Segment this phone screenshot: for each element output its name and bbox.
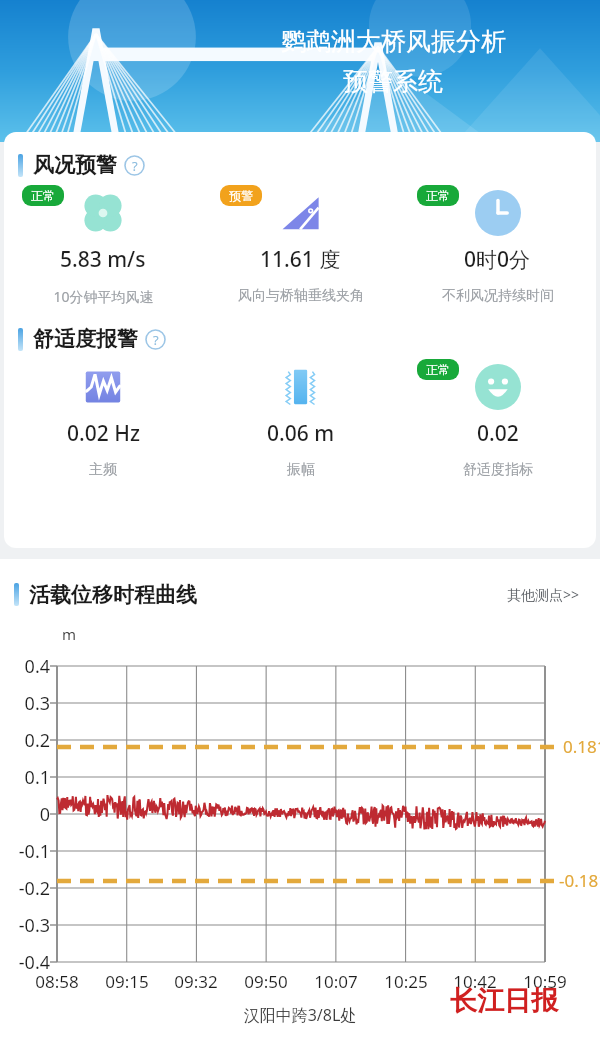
staticText: 0.02 Hz: [67, 419, 140, 448]
button[interactable]: 帮助说明: [124, 155, 145, 176]
staticText: 鹦鹉洲大桥风振分析: [281, 26, 506, 57]
staticText: 汉阳中跨3/8L处: [0, 1004, 600, 1026]
staticText: -0.181: [559, 869, 600, 892]
staticText: 5.83 m/s: [60, 245, 146, 274]
staticText: 10:25: [375, 970, 437, 993]
staticText: 其他测点>>: [507, 585, 580, 604]
staticText: 舒适度报警: [33, 326, 138, 352]
button[interactable]: 正常: [399, 184, 596, 305]
staticText: 风向与桥轴垂线夹角: [238, 287, 364, 305]
staticText: 风况预警: [33, 152, 117, 178]
staticText: 预警系统: [343, 66, 443, 97]
staticText: 活载位移时程曲线: [29, 582, 197, 608]
staticText: m: [62, 624, 77, 644]
staticText: 正常: [31, 188, 55, 203]
staticText: 09:15: [96, 970, 158, 993]
staticText: 0.06 m: [267, 419, 335, 448]
staticText: 0.4: [4, 654, 50, 679]
staticText: 0.1: [4, 765, 50, 790]
staticText: ?: [132, 157, 138, 175]
staticText: -0.4: [4, 950, 50, 975]
staticText: 预警: [229, 188, 253, 203]
staticText: 0.02: [477, 419, 519, 448]
staticText: 不利风况持续时间: [442, 287, 554, 305]
button[interactable]: 0.06 m: [202, 358, 399, 479]
staticText: 11.61 度: [260, 245, 341, 274]
staticText: 正常: [426, 188, 450, 203]
staticText: 09:32: [165, 970, 227, 993]
staticText: -0.2: [4, 876, 50, 901]
button[interactable]: 其他测点>>: [503, 581, 584, 608]
staticText: ?: [153, 331, 159, 349]
staticText: 正常: [426, 362, 450, 377]
staticText: 0时0分: [464, 245, 531, 274]
staticText: 0.181: [563, 735, 600, 758]
staticText: -0.3: [4, 913, 50, 938]
staticText: 0.2: [4, 728, 50, 753]
button[interactable]: 正常: [4, 184, 202, 306]
staticText: 振幅: [287, 461, 315, 479]
button[interactable]: 0.02 Hz: [4, 358, 202, 479]
staticText: -0.1: [4, 839, 50, 864]
button[interactable]: 帮助说明: [145, 329, 166, 350]
staticText: 10:59: [514, 970, 576, 993]
staticText: 0: [4, 802, 50, 827]
staticText: 08:58: [26, 970, 88, 993]
button[interactable]: 正常: [399, 358, 596, 479]
staticText: 10:42: [444, 970, 506, 993]
staticText: 舒适度指标: [463, 461, 533, 479]
staticText: 09:50: [235, 970, 297, 993]
staticText: 10:07: [305, 970, 367, 993]
button[interactable]: 预警: [202, 184, 399, 305]
staticText: 0.3: [4, 691, 50, 716]
staticText: 10分钟平均风速: [53, 287, 154, 306]
staticText: 主频: [89, 461, 117, 479]
staticText: 长江日报: [450, 984, 558, 1018]
